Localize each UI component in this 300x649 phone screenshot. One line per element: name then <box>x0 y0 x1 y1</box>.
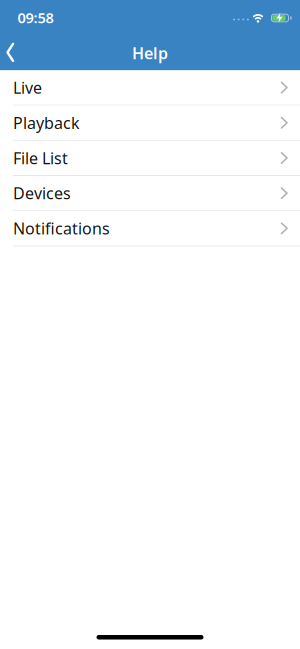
staticText: Live <box>13 77 42 98</box>
button[interactable]: Playback <box>0 106 300 141</box>
button[interactable]: Live <box>0 70 300 106</box>
staticText: Devices <box>13 182 71 204</box>
button[interactable]: File List <box>0 141 300 176</box>
staticText: 09:58 <box>17 8 53 27</box>
button[interactable]: Notifications <box>0 211 300 246</box>
staticText: File List <box>13 147 68 168</box>
button[interactable] <box>0 35 25 70</box>
staticText: Help <box>132 42 168 64</box>
staticText: Notifications <box>13 218 110 239</box>
staticText: Playback <box>13 112 80 133</box>
button[interactable]: Devices <box>0 176 300 211</box>
